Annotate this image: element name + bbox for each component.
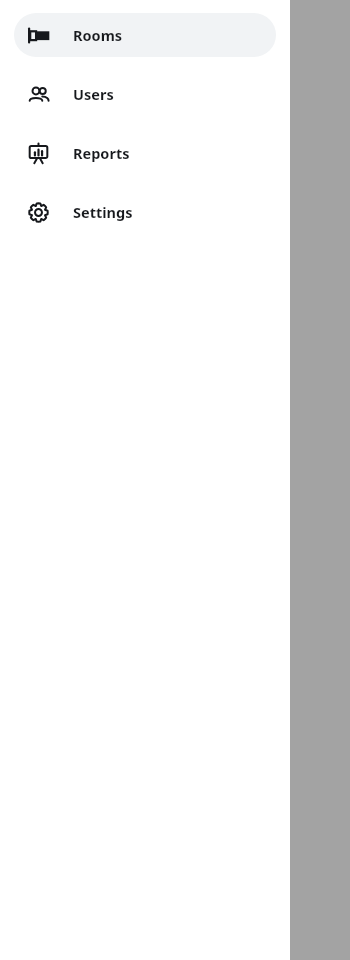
button[interactable]: Reports: [14, 131, 276, 175]
button[interactable]: Users: [14, 72, 276, 116]
staticText: Users: [73, 84, 114, 104]
button[interactable]: Rooms: [14, 13, 276, 57]
staticText: Rooms: [73, 25, 123, 45]
staticText: Settings: [73, 202, 133, 222]
staticText: Reports: [73, 143, 130, 163]
button[interactable]: Settings: [14, 190, 276, 234]
